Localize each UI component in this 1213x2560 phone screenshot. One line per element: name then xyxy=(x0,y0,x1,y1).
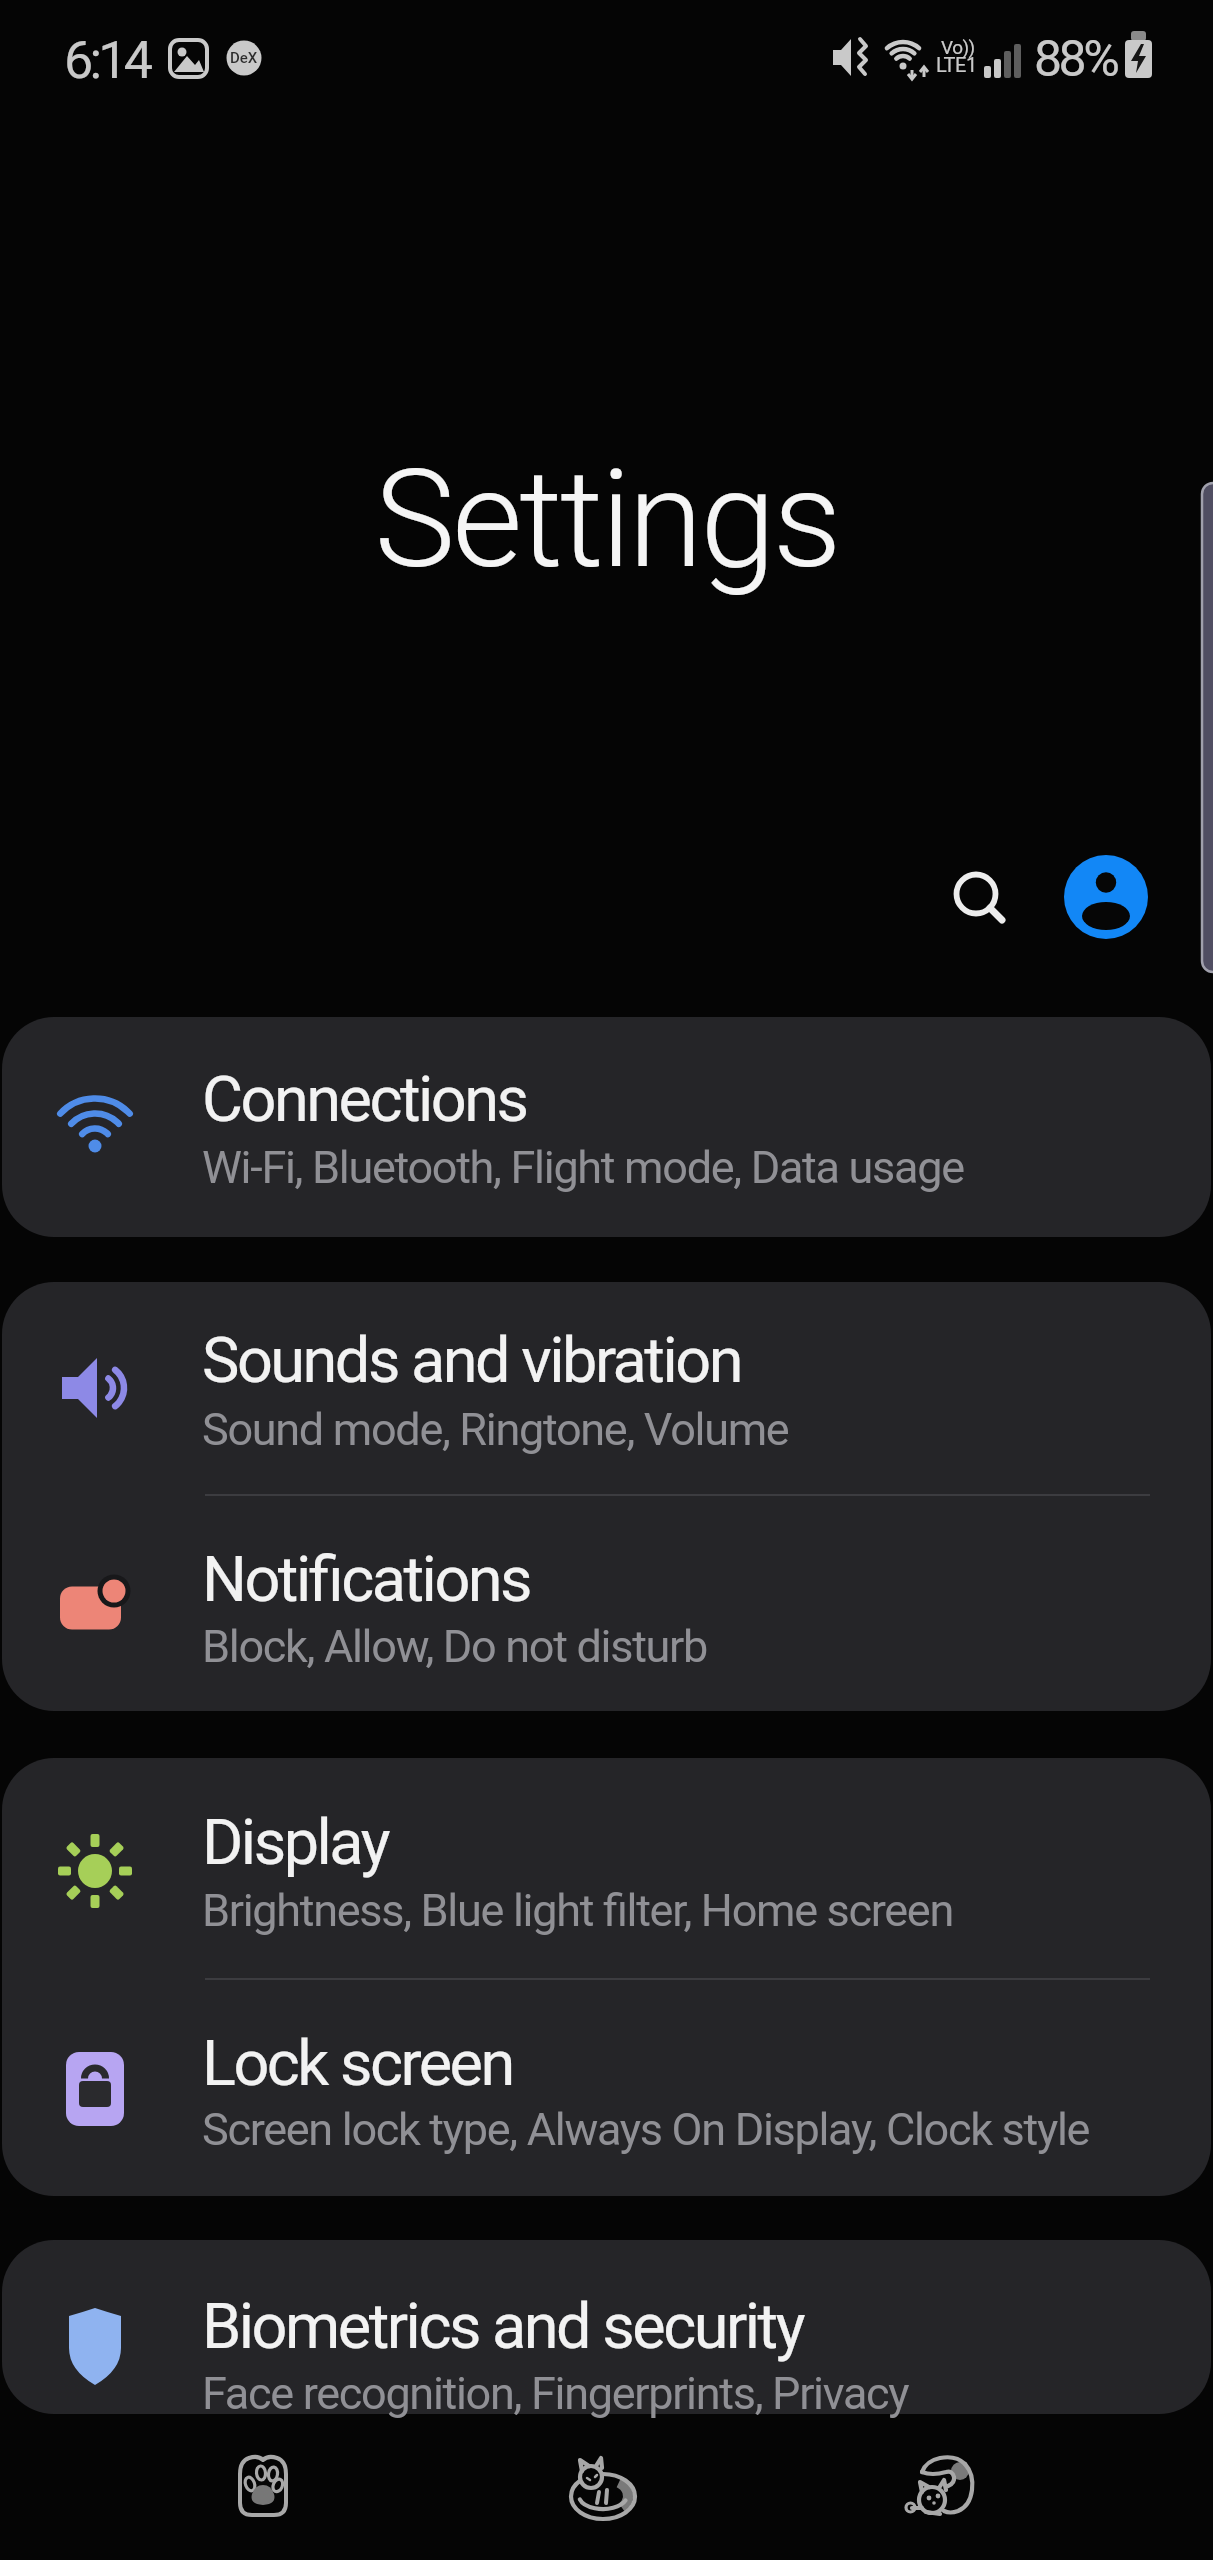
button[interactable] xyxy=(896,2442,986,2532)
button[interactable] xyxy=(2,2240,1211,2414)
staticText: DeX xyxy=(230,49,258,67)
staticText: Connections xyxy=(202,1063,527,1137)
staticText: 88% xyxy=(1034,30,1117,89)
staticText: Vo)) xyxy=(941,36,975,58)
staticText: Biometrics and security xyxy=(202,2290,803,2364)
button[interactable] xyxy=(2,1979,1211,2196)
staticText: Sounds and vibration xyxy=(202,1324,741,1398)
staticText: Block, Allow, Do not disturb xyxy=(202,1620,707,1673)
staticText: Wi-Fi, Bluetooth, Flight mode, Data usag… xyxy=(202,1141,964,1194)
staticText: Brightness, Blue light filter, Home scre… xyxy=(202,1884,953,1937)
staticText: Notifications xyxy=(202,1543,531,1617)
button[interactable] xyxy=(1064,855,1148,939)
staticText: 6:14 xyxy=(64,30,150,91)
button[interactable] xyxy=(218,2441,308,2531)
button[interactable] xyxy=(2,1282,1211,1495)
staticText: Settings xyxy=(0,440,1213,599)
staticText: Screen lock type, Always On Display, Clo… xyxy=(202,2103,1090,2156)
button[interactable] xyxy=(2,1017,1211,1237)
staticText: Display xyxy=(202,1806,388,1880)
button[interactable] xyxy=(930,848,1022,940)
staticText: Sound mode, Ringtone, Volume xyxy=(202,1403,789,1456)
button[interactable] xyxy=(2,1758,1211,1978)
staticText: LTE1 xyxy=(936,53,977,76)
staticText: Face recognition, Fingerprints, Privacy xyxy=(202,2367,909,2420)
button[interactable] xyxy=(557,2445,647,2535)
button[interactable] xyxy=(2,1495,1211,1711)
staticText: Lock screen xyxy=(202,2027,513,2101)
